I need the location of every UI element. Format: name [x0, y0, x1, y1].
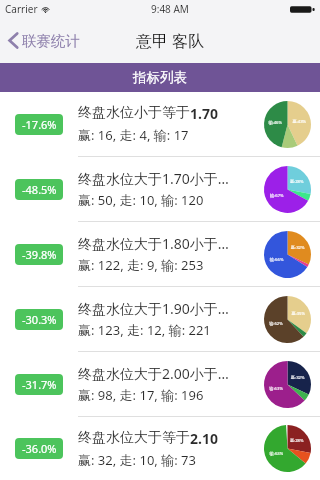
staticText: Carrier [5, 2, 38, 16]
button[interactable]: 返回 联赛统计 [5, 24, 83, 57]
staticText: 赢: 98, 走: 17, 输: 196 [78, 386, 204, 404]
button[interactable]: -48.5% [0, 157, 320, 221]
staticText: -36.0% [22, 441, 57, 456]
staticText: 终盘水位大于1.80小于… [78, 234, 229, 253]
staticText: 赢: 50, 走: 10, 输: 120 [78, 191, 204, 209]
staticText: -17.6% [22, 117, 57, 132]
staticText: -31.7% [22, 377, 57, 392]
staticText: 终盘水位大于1.70小于… [78, 169, 229, 188]
staticText: 终盘水位大于2.00小于… [78, 364, 229, 383]
staticText: -48.5% [22, 182, 57, 197]
button[interactable]: -36.0% [0, 417, 320, 480]
staticText: 终盘水位小于等于 [78, 104, 190, 122]
staticText: -39.8% [22, 247, 57, 262]
button[interactable]: -30.3% [0, 287, 320, 351]
staticText: 赢: 123, 走: 12, 输: 221 [78, 321, 211, 339]
button[interactable]: -17.6% [0, 92, 320, 156]
staticText: 指标列表 [133, 69, 187, 86]
staticText: 2.10 [190, 429, 218, 448]
staticText: -30.3% [22, 312, 57, 327]
staticText: 终盘水位大于1.90小于… [78, 299, 229, 318]
staticText: 1.70 [190, 104, 218, 123]
staticText: 意甲 客队 [136, 30, 205, 52]
staticText: 赢: 32, 走: 10, 输: 73 [78, 451, 196, 469]
button[interactable]: -39.8% [0, 222, 320, 286]
staticText: 9:48 AM [151, 2, 189, 16]
staticText: 赢: 122, 走: 9, 输: 253 [78, 256, 204, 274]
staticText: 赢: 16, 走: 4, 输: 17 [78, 126, 189, 144]
staticText: 终盘水位大于等于 [78, 429, 190, 447]
button[interactable]: -31.7% [0, 352, 320, 416]
staticText: 联赛统计 [22, 32, 80, 50]
